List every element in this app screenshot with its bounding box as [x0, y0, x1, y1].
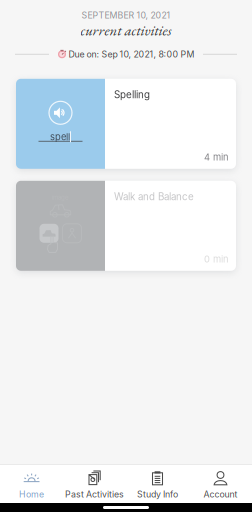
button[interactable]: image [16, 181, 236, 271]
staticText: current activities [80, 21, 171, 40]
staticText: Spelling [114, 89, 150, 101]
button[interactable]: Past Activities [63, 465, 126, 503]
staticText: spell [50, 131, 70, 142]
staticText: Walk and Balance [114, 191, 194, 203]
staticText: Due on: Sep 10, 2021, 8:00 PM [68, 49, 194, 60]
button[interactable]: Account [189, 465, 252, 503]
staticText: Study Info [137, 489, 178, 500]
staticText: 4 min [204, 151, 229, 163]
staticText: SEPTEMBER 10, 2021 [81, 10, 170, 21]
button[interactable]: spell [16, 79, 236, 169]
staticText: Home [19, 489, 44, 500]
staticText: 0 min [204, 253, 229, 265]
staticText: Account [203, 489, 237, 500]
button[interactable]: Home [0, 465, 63, 503]
staticText: Past Activities [65, 489, 124, 500]
button[interactable]: Study Info [126, 465, 189, 503]
